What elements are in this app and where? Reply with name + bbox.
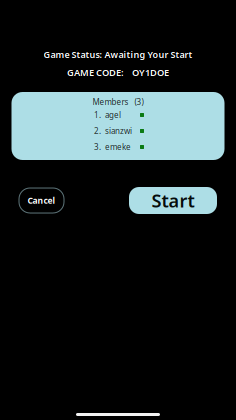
staticText: Game Status: Awaiting Your Start [43,48,192,61]
button[interactable]: Cancel [19,188,64,213]
staticText: Members (3) [92,97,143,107]
staticText: sianzwi [105,126,132,136]
staticText: 2. [94,126,101,136]
staticText: Start [151,188,194,213]
button[interactable]: Start [129,187,217,214]
staticText: emeke [105,142,131,152]
staticText: agel [105,110,121,120]
staticText: 1. [94,110,101,120]
staticText: GAME CODE: OY1DOE [67,66,169,79]
staticText: 3. [94,142,101,152]
staticText: Cancel [27,195,55,206]
